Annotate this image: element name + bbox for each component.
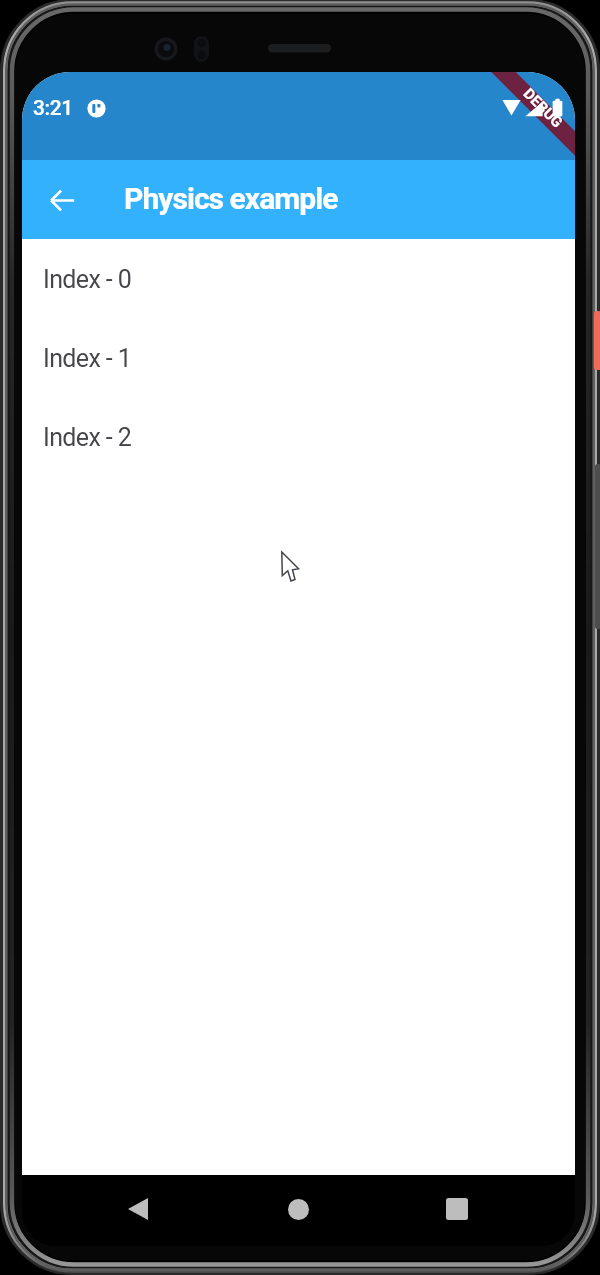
- staticText: Physics example: [124, 181, 338, 216]
- button[interactable]: Index - 0: [22, 239, 575, 318]
- button[interactable]: Back: [38, 176, 86, 224]
- staticText: 3:21: [33, 96, 73, 121]
- staticText: Index - 2: [43, 423, 132, 452]
- button[interactable]: Back: [110, 1181, 166, 1237]
- staticText: Index - 1: [43, 344, 132, 373]
- button[interactable]: Index - 2: [22, 397, 575, 476]
- staticText: DEBUG: [520, 85, 566, 131]
- button[interactable]: Index - 1: [22, 318, 575, 397]
- button[interactable]: Home: [270, 1181, 326, 1237]
- staticText: Index - 0: [43, 265, 132, 294]
- button[interactable]: Recent apps: [429, 1181, 485, 1237]
